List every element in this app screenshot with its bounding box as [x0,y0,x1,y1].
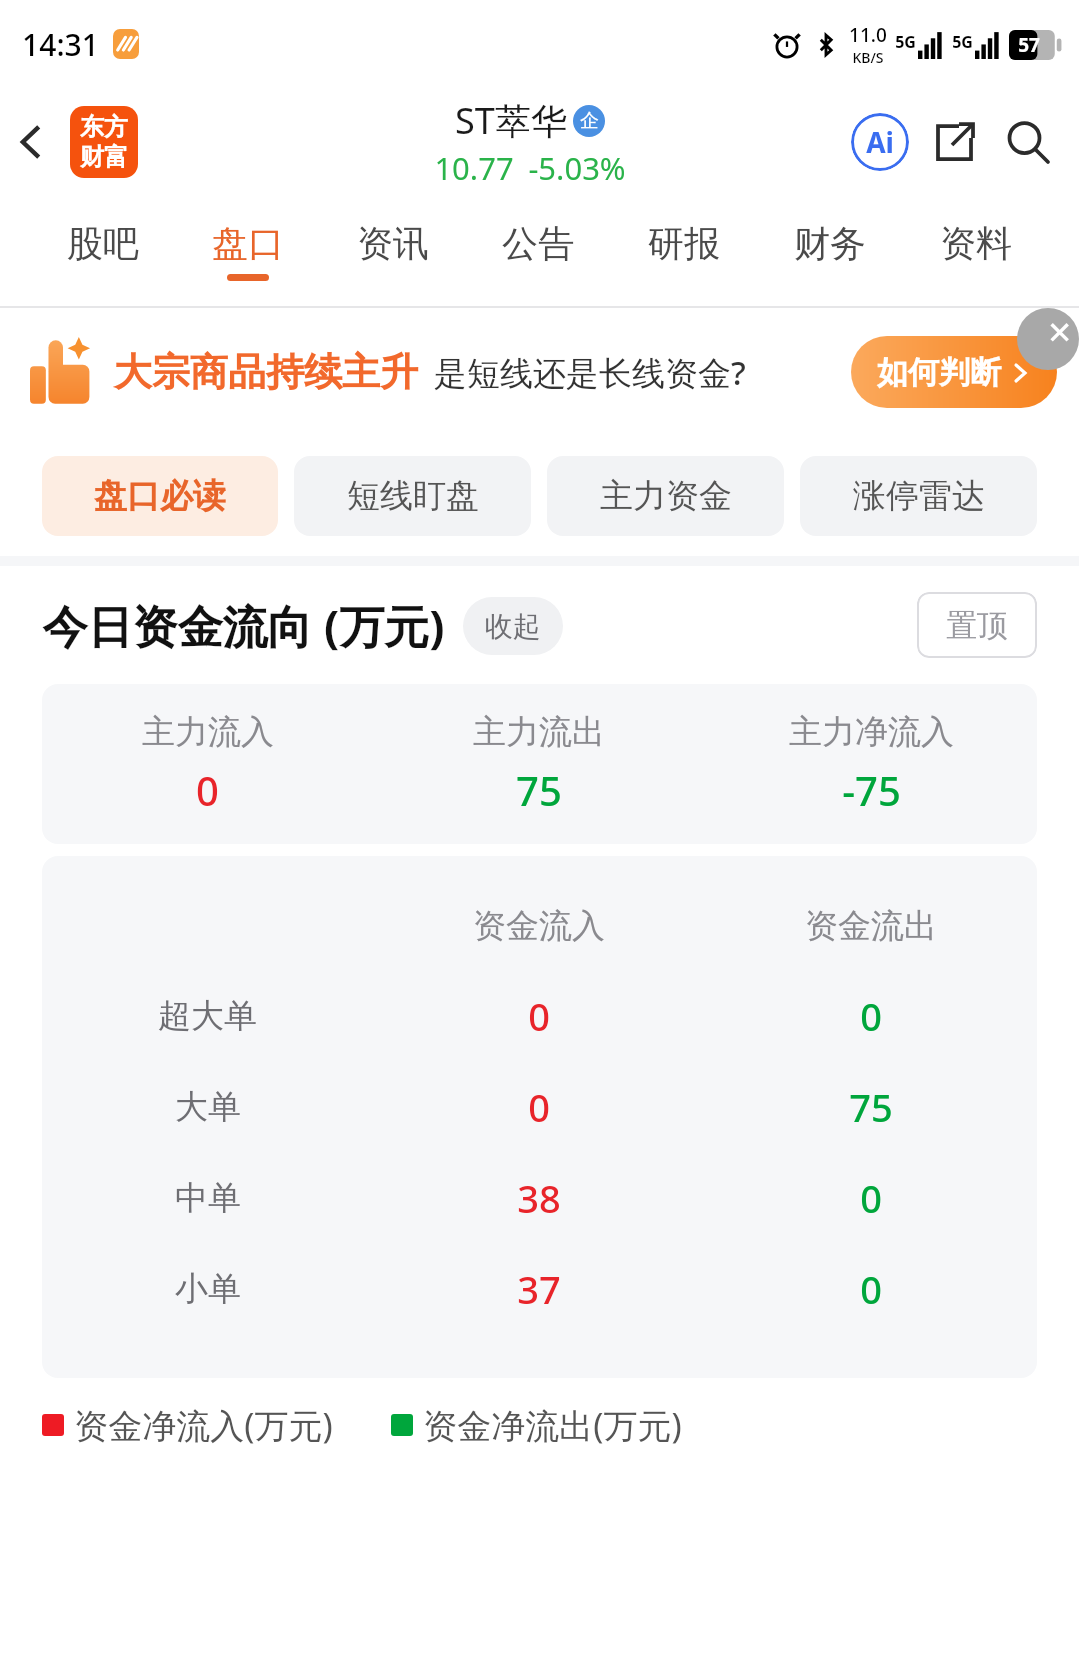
staticText: 14:31 [22,24,99,65]
staticText: 37 [517,1263,561,1315]
staticText: 财务 [794,221,866,266]
button[interactable]: 资讯 [320,196,465,306]
staticText: 大单 [175,1086,241,1128]
button[interactable]: 置顶 [917,592,1037,658]
staticText: 资料 [940,221,1012,266]
staticText: 今日资金流向 (万元) [42,595,445,656]
staticText: 盘口 [212,221,284,266]
staticText: 企 [580,109,599,133]
button[interactable]: 盘口必读 [42,456,278,536]
staticText: 75 [849,1081,893,1133]
staticText: 5G [952,31,973,53]
button[interactable]: 主力流入 [42,684,1037,844]
button[interactable]: 股吧 [30,196,175,306]
button[interactable]: 中单 [42,1152,1037,1243]
staticText: KB/S [852,48,884,67]
button[interactable]: Share [917,105,991,179]
button[interactable]: Back [0,111,62,173]
button[interactable]: 涨停雷达 [800,456,1037,536]
button[interactable]: 如何判断 [877,336,1031,408]
staticText: -75 [842,763,901,817]
button[interactable]: 大单 [42,1061,1037,1152]
staticText: 主力净流入 [789,711,954,753]
staticText: 资讯 [357,221,429,266]
button[interactable]: 资料 [903,196,1049,306]
staticText: 如何判断 [877,353,1001,392]
staticText: 资金净流入(万元) [74,1402,333,1448]
staticText: 超大单 [158,995,257,1037]
button[interactable]: 短线盯盘 [294,456,531,536]
staticText: 大宗商品持续主升 [114,348,418,396]
button[interactable]: 资金流入 [42,882,1037,1352]
staticText: Ai [866,123,894,161]
button[interactable]: 主力资金 [547,456,784,536]
staticText: 75 [516,763,562,817]
staticText: 11.0 [849,22,887,48]
staticText: 0 [528,1081,550,1133]
staticText: 5G [895,31,916,53]
staticText: 小单 [175,1268,241,1310]
staticText: 资金净流出(万元) [423,1402,682,1448]
staticText: 主力流入 [142,711,274,753]
staticText: 0 [528,990,550,1042]
button[interactable]: Close ad [1033,308,1079,354]
button[interactable]: 大宗商品持续主升 [0,308,1079,436]
staticText: 资金流出 [805,905,937,947]
staticText: 置顶 [946,606,1008,645]
staticText: 盘口必读 [94,475,226,517]
staticText: 0 [860,1172,882,1224]
staticText: 收起 [485,609,541,644]
button[interactable]: 小单 [42,1243,1037,1334]
staticText: 东方 [80,112,128,142]
staticText: 0 [196,763,219,817]
staticText: 财富 [80,142,128,172]
button[interactable]: 研报 [611,196,757,306]
button[interactable]: 超大单 [42,970,1037,1061]
button[interactable]: 盘口 [175,196,320,306]
staticText: 资金流入 [473,905,605,947]
staticText: 公告 [502,221,574,266]
staticText: 短线盯盘 [347,475,479,517]
staticText: 研报 [648,221,720,266]
button[interactable]: 收起 [485,597,541,655]
button[interactable]: AI assistant [843,105,917,179]
staticText: 中单 [175,1177,241,1219]
staticText: 涨停雷达 [853,475,985,517]
button[interactable]: Search [991,105,1065,179]
button[interactable]: 财务 [757,196,903,306]
button[interactable]: 公告 [465,196,611,306]
staticText: 股吧 [67,221,139,266]
staticText: 主力流出 [473,711,605,753]
button[interactable]: East Money [70,106,138,178]
staticText: -5.03% [528,147,626,189]
staticText: 38 [517,1172,561,1224]
staticText: ST萃华 [455,96,567,145]
staticText: 是短线还是长线资金? [434,350,746,395]
staticText: 主力资金 [600,475,732,517]
staticText: 0 [860,1263,882,1315]
staticText: 10.77 [434,147,514,189]
staticText: 0 [860,990,882,1042]
staticText: 57 [1018,32,1040,58]
